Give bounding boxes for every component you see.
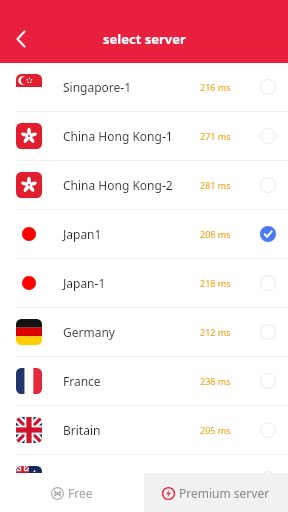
button[interactable]: Britain [0,406,288,454]
staticText: Britain [63,422,200,438]
staticText: select server [103,30,186,48]
button[interactable]: Germany [0,308,288,356]
staticText: 216 ms [200,81,248,93]
staticText: 205 ms [200,424,248,436]
button[interactable]: Singapore-1 [0,63,288,111]
button[interactable]: Japan1 [0,210,288,258]
button[interactable]: Free [0,473,144,512]
staticText: China Hong Kong-1 [63,128,200,144]
staticText: 271 ms [200,130,248,142]
staticText: Germany [63,324,200,340]
staticText: 212 ms [200,326,248,338]
button[interactable]: Premium server [144,473,288,512]
staticText: Australia [63,471,200,487]
button[interactable]: Back [0,18,42,60]
button[interactable]: Japan-1 [0,259,288,307]
button[interactable]: Australia [0,455,288,503]
staticText: China Hong Kong-2 [63,177,200,193]
staticText: 218 ms [200,277,248,289]
button[interactable]: France [0,357,288,405]
staticText: Singapore-1 [63,79,200,95]
staticText: Premium server [179,485,270,501]
staticText: Japan1 [63,226,200,242]
staticText: France [63,373,200,389]
staticText: Free [68,485,93,501]
button[interactable]: China Hong Kong-1 [0,112,288,160]
button[interactable]: China Hong Kong-2 [0,161,288,209]
staticText: 281 ms [200,179,248,191]
staticText: Japan-1 [63,275,200,291]
staticText: 208 ms [200,228,248,240]
staticText: 238 ms [200,375,248,387]
